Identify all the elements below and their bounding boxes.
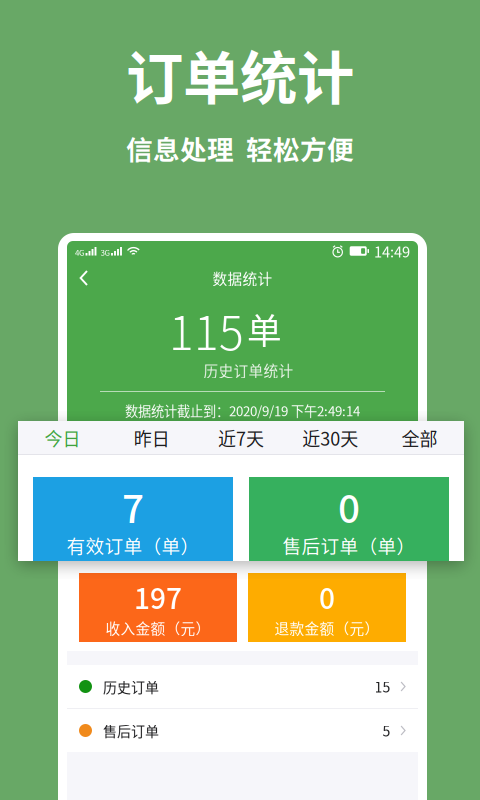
staticText: 197 <box>134 576 182 617</box>
staticText: 单 <box>247 304 282 354</box>
staticText: 信息处理 轻松方便 <box>126 129 354 167</box>
button[interactable]: 历史订单 <box>67 665 418 708</box>
staticText: 近30天 <box>302 425 358 451</box>
staticText: 7 <box>150 465 166 506</box>
staticText: 全部 <box>401 425 437 451</box>
staticText: 3G <box>100 246 110 258</box>
staticText: 售后订单（单） <box>282 532 415 559</box>
staticText: 115 <box>169 297 244 363</box>
staticText: 有效订单（单） <box>66 532 199 559</box>
staticText: 退款金额（元） <box>274 617 379 638</box>
staticText: 0 <box>338 478 360 534</box>
staticText: 有效订单（单） <box>105 506 210 527</box>
button[interactable]: 0 <box>248 462 406 531</box>
staticText: 5 <box>382 720 390 741</box>
staticText: 历史订单统计 <box>203 359 293 381</box>
button[interactable]: 7 <box>33 477 233 570</box>
button[interactable]: 全部 <box>348 421 418 449</box>
button[interactable]: Back <box>72 263 96 293</box>
staticText: 0 <box>319 465 335 506</box>
staticText: 售后订单（单） <box>274 506 379 527</box>
button[interactable]: 197 <box>79 573 237 642</box>
button[interactable]: 今日 <box>18 421 107 455</box>
staticText: 售后订单 <box>103 720 159 741</box>
staticText: 7 <box>122 478 144 534</box>
button[interactable]: 0 <box>249 477 449 570</box>
button[interactable]: 昨日 <box>107 421 196 455</box>
staticText: 近30天 <box>290 424 336 446</box>
staticText: 近7天 <box>218 425 264 451</box>
staticText: 数据统计截止到：2020/9/19 下午2:49:14 <box>125 401 360 420</box>
button[interactable]: 7 <box>79 462 237 531</box>
button[interactable]: 近7天 <box>196 421 286 455</box>
staticText: 昨日 <box>157 424 187 446</box>
staticText: 订单统计 <box>126 32 354 115</box>
staticText: 昨日 <box>134 425 170 451</box>
button[interactable]: 0 <box>248 573 406 642</box>
staticText: 近7天 <box>223 424 261 446</box>
staticText: 0 <box>319 576 335 617</box>
staticText: 14:49 <box>374 240 410 262</box>
button[interactable]: 今日 <box>67 421 137 449</box>
staticText: 数据统计 <box>212 267 272 289</box>
staticText: 4G <box>75 246 85 258</box>
button[interactable]: 近7天 <box>207 421 278 449</box>
staticText: 15 <box>374 676 390 697</box>
staticText: 历史订单 <box>103 676 159 697</box>
staticText: 收入金额（元） <box>105 617 210 638</box>
button[interactable]: 近30天 <box>278 421 348 449</box>
button[interactable]: 售后订单 <box>67 709 418 752</box>
button[interactable]: 昨日 <box>137 421 207 449</box>
button[interactable]: 近30天 <box>286 421 375 455</box>
staticText: 今日 <box>45 425 81 451</box>
button[interactable]: 全部 <box>375 421 464 455</box>
